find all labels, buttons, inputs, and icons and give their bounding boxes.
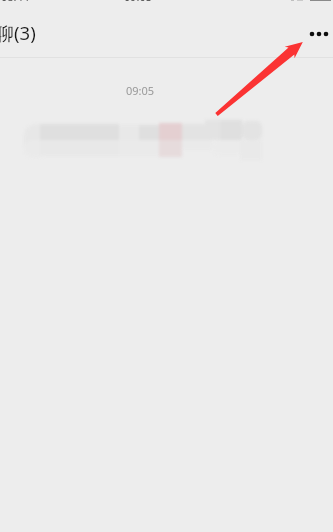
staticText: 群聊(3) [0,20,36,45]
staticText: 09:05 [124,0,153,4]
staticText: 09:05 [126,83,155,98]
staticText: 08:44 [1,0,30,4]
button[interactable]: More options [297,12,333,55]
